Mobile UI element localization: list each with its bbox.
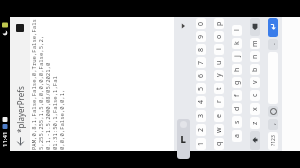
button[interactable]: u	[214, 57, 224, 68]
button[interactable]: ,	[268, 119, 278, 130]
staticText: c	[250, 93, 260, 97]
staticText: 7	[196, 60, 206, 65]
button[interactable]: Back	[10, 133, 30, 151]
button[interactable]: z	[250, 117, 260, 129]
button[interactable]: ?123	[268, 132, 278, 150]
staticText: 01:31:50,1,False,1,Fal	[51, 76, 58, 150]
staticText: v	[250, 80, 260, 84]
staticText: f	[232, 94, 242, 97]
staticText: z	[250, 121, 260, 125]
button[interactable]: Save	[10, 21, 30, 35]
button[interactable]: Expand suggestions	[176, 19, 190, 33]
staticText: 8	[196, 47, 206, 52]
staticText: u	[214, 60, 224, 65]
staticText: g	[232, 80, 242, 85]
button[interactable]: 5	[196, 83, 206, 94]
button[interactable]: w	[214, 124, 224, 136]
staticText: 4	[196, 99, 206, 104]
staticText: j	[232, 55, 242, 57]
staticText: l	[232, 29, 242, 31]
staticText: 1	[196, 141, 206, 146]
button[interactable]: m	[250, 38, 260, 49]
staticText: 3	[196, 113, 206, 118]
staticText: ?123	[270, 135, 277, 146]
staticText: s	[232, 120, 242, 124]
staticText: o	[214, 34, 224, 39]
button[interactable]: b	[250, 64, 260, 75]
button[interactable]: i	[214, 44, 224, 55]
button[interactable]: a	[232, 130, 242, 142]
staticText: h	[232, 67, 242, 72]
button[interactable]: .	[268, 39, 278, 50]
button[interactable]: v	[250, 77, 260, 88]
button[interactable]: Enter	[268, 18, 278, 37]
staticText: 5,255,255,1,5,0,0,0,0,0,False,5,2,	[37, 35, 44, 150]
staticText: k	[232, 41, 242, 45]
button[interactable]: d	[232, 103, 242, 114]
staticText: t	[214, 87, 224, 90]
button[interactable]: t	[214, 83, 224, 94]
button[interactable]: r	[214, 96, 224, 108]
button[interactable]: shift	[250, 131, 260, 150]
staticText: 0.1,-1.5,2000,08/05/2021,0	[44, 62, 51, 150]
button[interactable]: 8	[196, 44, 206, 55]
staticText: q	[214, 141, 224, 146]
button[interactable]: 2	[196, 124, 206, 136]
staticText: n	[250, 54, 260, 59]
staticText: 5	[196, 86, 206, 91]
staticText: x	[250, 107, 260, 111]
button[interactable]: 7	[196, 57, 206, 68]
staticText: 11:41	[1, 131, 9, 147]
button[interactable]: backspace	[250, 18, 260, 36]
staticText: d	[232, 106, 242, 111]
button[interactable]: x	[250, 103, 260, 115]
staticText: e	[214, 114, 224, 118]
staticText: y	[214, 73, 224, 77]
button[interactable]: s	[232, 116, 242, 128]
staticText: m	[250, 40, 260, 47]
button[interactable]: h	[232, 64, 242, 75]
staticText: 6	[196, 73, 206, 78]
button[interactable]: e	[214, 110, 224, 122]
button[interactable]: c	[250, 90, 260, 101]
button[interactable]: q	[214, 138, 224, 150]
button[interactable]: 6	[196, 70, 206, 81]
staticText: ,	[268, 123, 278, 125]
staticText: 9	[196, 34, 206, 39]
staticText: r	[214, 100, 224, 103]
button[interactable]: Emoji	[268, 106, 278, 117]
button[interactable]: 1	[196, 138, 206, 150]
staticText: 0,0,0,False,0,0,1,	[58, 89, 65, 150]
staticText: 2	[196, 127, 206, 132]
button[interactable]: 3	[196, 110, 206, 122]
button[interactable]: p	[214, 18, 224, 29]
button[interactable]: 9	[196, 31, 206, 42]
staticText: .	[268, 43, 278, 45]
button[interactable]: o	[214, 31, 224, 42]
button[interactable]: 4	[196, 96, 206, 108]
staticText: i	[214, 48, 224, 50]
button[interactable]: y	[214, 70, 224, 81]
button[interactable]: l	[232, 25, 242, 36]
button[interactable]: 0	[196, 18, 206, 29]
staticText: p	[214, 21, 224, 26]
staticText: w	[214, 127, 224, 133]
button[interactable]: Suggestion	[177, 119, 190, 159]
button[interactable]: j	[232, 51, 242, 62]
button[interactable]: n	[250, 51, 260, 62]
staticText: 0	[196, 21, 206, 26]
button[interactable]: f	[232, 90, 242, 101]
button[interactable]: k	[232, 38, 242, 49]
staticText: PAM,0,8,1,False,False,0,True,False,Fals	[30, 19, 37, 150]
staticText: *playerPrefs	[15, 86, 26, 133]
button[interactable]: g	[232, 77, 242, 88]
staticText: b	[250, 67, 260, 72]
staticText: a	[232, 134, 242, 138]
